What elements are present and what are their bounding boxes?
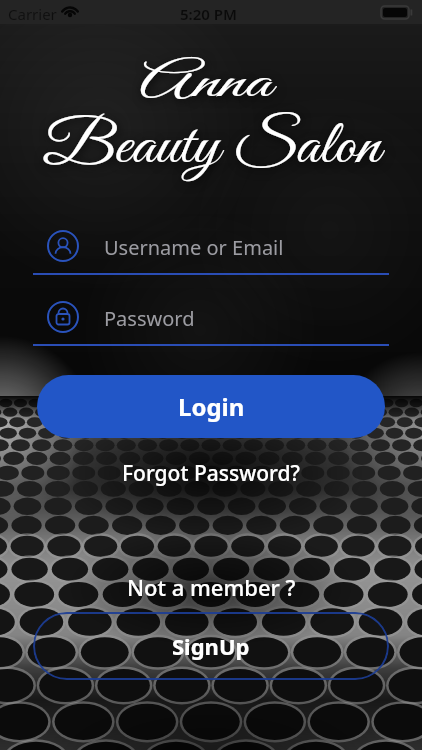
staticText: Not a member ? [127,572,296,602]
button[interactable]: Username or Email [33,222,389,275]
button[interactable]: Password [33,293,389,346]
button[interactable]: Login [37,375,385,438]
staticText: Login [178,390,245,423]
staticText: Username or Email [104,234,284,261]
staticText: SignUp [172,631,250,661]
button[interactable]: Forgot Password? [0,459,422,488]
staticText: Forgot Password? [122,459,300,488]
staticText: Password [104,305,195,332]
button[interactable]: SignUp [33,612,389,680]
staticText: Carrier [8,4,57,24]
staticText: Anna [139,53,273,117]
staticText: Beauty Salon [43,111,380,186]
staticText: 5:20 PM [180,4,237,24]
